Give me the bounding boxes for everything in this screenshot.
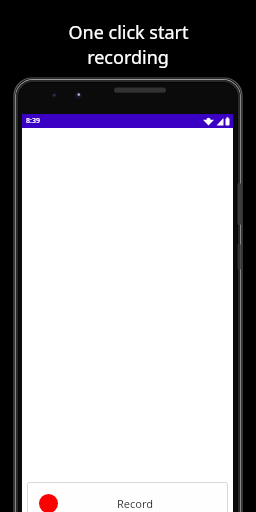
button[interactable]: Record: [27, 482, 228, 512]
staticText: One click start: [68, 20, 189, 45]
staticText: Record: [117, 496, 154, 511]
staticText: 8:39: [26, 116, 40, 126]
staticText: recording: [87, 45, 169, 70]
